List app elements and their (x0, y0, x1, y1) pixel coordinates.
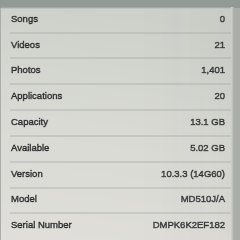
staticText: Videos (11, 39, 40, 50)
button[interactable]: Songs (1, 7, 232, 33)
staticText: Capacity (11, 116, 48, 127)
staticText: Songs (11, 13, 38, 24)
button[interactable]: Videos (1, 33, 232, 59)
staticText: Model (11, 193, 37, 204)
staticText: DMPK6K2EF182 (152, 219, 225, 230)
button[interactable]: Applications (1, 84, 232, 110)
staticText: 5.02 GB (190, 142, 225, 153)
staticText: MD510J/A (180, 193, 225, 204)
staticText: Capacity (11, 116, 48, 127)
staticText: Songs (11, 13, 38, 24)
staticText: MD510J/A (180, 193, 225, 204)
staticText: 13.1 GB (190, 116, 225, 127)
staticText: 20 (214, 90, 225, 101)
staticText: Photos (11, 64, 41, 75)
staticText: 1,401 (201, 64, 225, 75)
button[interactable]: Serial Number (1, 213, 232, 239)
staticText: Version (11, 168, 43, 179)
staticText: Available (11, 142, 50, 153)
button[interactable]: Version (1, 162, 232, 188)
staticText: Videos (11, 39, 40, 50)
staticText: 20 (214, 90, 225, 101)
staticText: 1,401 (201, 64, 225, 75)
staticText: 10.3.3 (14G60) (161, 168, 225, 179)
button[interactable]: Photos (1, 58, 232, 84)
staticText: Model (11, 193, 37, 204)
staticText: Applications (11, 90, 63, 101)
staticText: DMPK6K2EF182 (152, 219, 225, 230)
staticText: Serial Number (11, 219, 72, 230)
button[interactable]: Available (1, 136, 232, 162)
staticText: Serial Number (11, 219, 72, 230)
staticText: 21 (214, 39, 225, 50)
staticText: 0 (219, 13, 225, 24)
staticText: 21 (214, 39, 225, 50)
button[interactable]: Model (1, 187, 232, 213)
staticText: 10.3.3 (14G60) (161, 168, 225, 179)
staticText: 0 (219, 13, 225, 24)
staticText: Version (11, 168, 43, 179)
staticText: Applications (11, 90, 63, 101)
button[interactable]: Capacity (1, 110, 232, 136)
staticText: Photos (11, 64, 41, 75)
staticText: 5.02 GB (190, 142, 225, 153)
staticText: Available (11, 142, 50, 153)
staticText: 13.1 GB (190, 116, 225, 127)
